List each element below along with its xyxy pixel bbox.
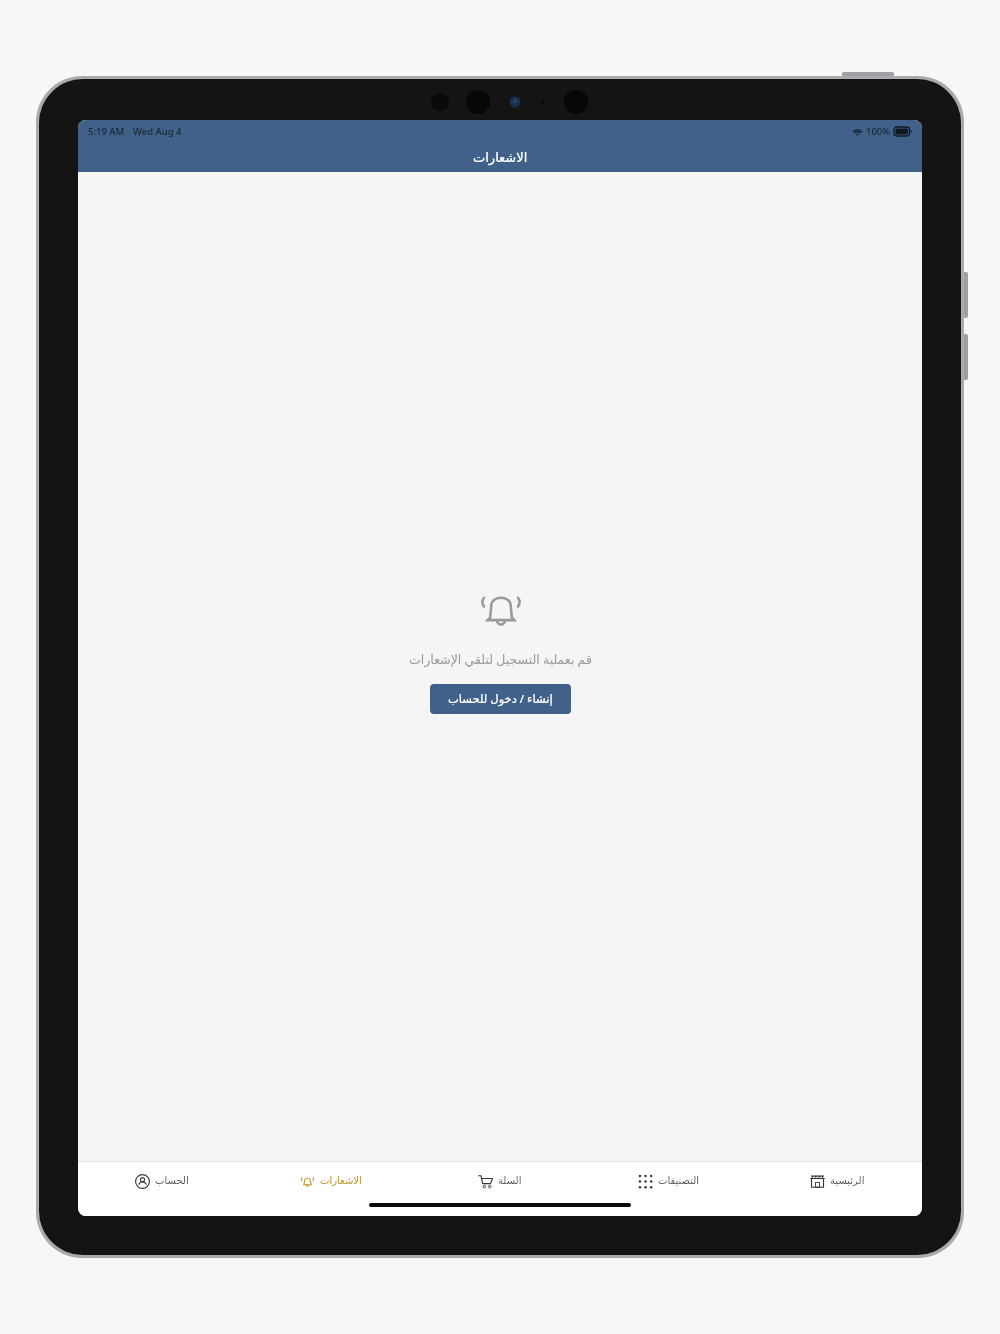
staticText: قم بعملية التسجيل لتلقي الإشعارات <box>409 651 592 668</box>
button[interactable]: الاشعارات <box>246 1162 415 1200</box>
staticText: التصنيفات <box>658 1175 700 1187</box>
staticText: 5:19 AM <box>88 125 125 138</box>
staticText: 100% <box>866 125 891 138</box>
staticText: Wed Aug 4 <box>133 125 182 138</box>
staticText: الرئيسية <box>830 1175 865 1187</box>
staticText: الاشعارات <box>473 150 528 165</box>
button[interactable]: الرئيسية <box>753 1162 922 1200</box>
staticText: الحساب <box>155 1175 189 1187</box>
staticText: إنشاء / دخول للحساب <box>448 691 553 707</box>
button[interactable]: الحساب <box>78 1162 246 1200</box>
staticText: السلة <box>498 1175 522 1187</box>
button[interactable]: التصنيفات <box>584 1162 753 1200</box>
button[interactable]: إنشاء / دخول للحساب <box>430 684 571 714</box>
button[interactable]: السلة <box>415 1162 584 1200</box>
staticText: الاشعارات <box>320 1175 362 1187</box>
